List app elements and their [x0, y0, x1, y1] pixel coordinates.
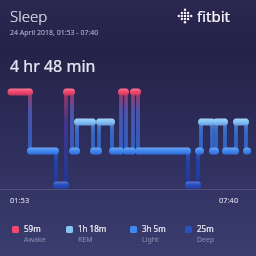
staticText: fitbit: [197, 6, 230, 26]
button[interactable]: 3h 5m: [130, 223, 166, 245]
staticText: 24 April 2018, 01:53 - 07:40: [10, 28, 99, 38]
staticText: Awake: [24, 235, 46, 245]
button[interactable]: 1h 18m: [66, 223, 107, 245]
button[interactable]: 59m: [12, 223, 46, 245]
staticText: 1h 18m: [78, 223, 107, 234]
staticText: 25m: [197, 223, 214, 234]
button[interactable]: fitbit: [177, 6, 230, 26]
staticText: 3h 5m: [142, 223, 166, 234]
staticText: Sleep: [10, 6, 48, 26]
button[interactable]: 25m: [185, 223, 215, 245]
staticText: REM: [78, 235, 93, 245]
staticText: 07:40: [219, 195, 239, 205]
staticText: Deep: [197, 235, 215, 245]
staticText: 01:53: [10, 195, 30, 205]
staticText: 59m: [24, 223, 41, 234]
staticText: Light: [142, 235, 159, 245]
staticText: 4 hr 48 min: [10, 55, 96, 77]
